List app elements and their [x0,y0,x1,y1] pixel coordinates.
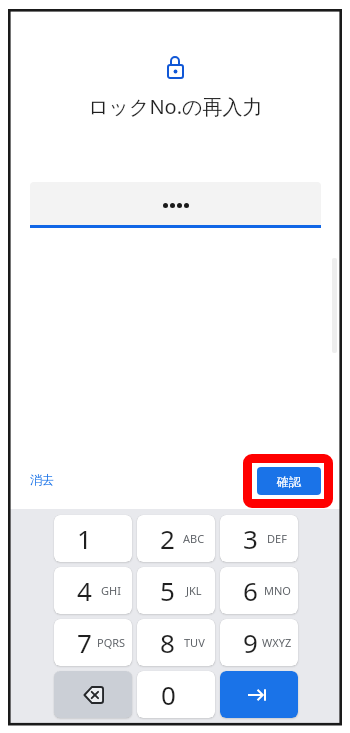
staticText: JKL [186,583,202,598]
staticText: DEF [267,531,287,546]
button[interactable]: 5 [137,567,215,614]
button[interactable]: 4 [54,567,132,614]
staticText: 5 [160,573,175,608]
staticText: MNO [264,583,291,598]
staticText: ABC [183,531,205,546]
staticText: 消去 [30,472,54,487]
staticText: 9 [243,625,258,660]
button[interactable]: Backspace [54,671,132,718]
button[interactable]: 7 [54,619,132,666]
staticText: TUV [184,635,205,650]
staticText: WXYZ [262,635,292,650]
button[interactable]: 9 [220,619,298,666]
button[interactable]: Lock number entry field [30,182,321,225]
button[interactable]: 消去 [24,466,60,493]
staticText: 0 [161,677,176,712]
staticText: ロックNo.の再入力 [88,93,263,120]
staticText: 確認 [277,474,301,489]
staticText: 8 [160,625,175,660]
button[interactable]: 1 [54,515,132,562]
staticText: GHI [101,583,121,598]
button[interactable]: Next [220,671,298,718]
button[interactable]: 2 [137,515,215,562]
staticText: 7 [77,625,92,660]
staticText: 2 [160,521,175,556]
staticText: PQRS [97,635,126,650]
button[interactable]: 0 [137,671,215,718]
staticText: 6 [243,573,258,608]
button[interactable]: 確認 [257,467,321,495]
button[interactable]: 3 [220,515,298,562]
staticText: 1 [77,521,92,556]
staticText: 4 [77,573,92,608]
button[interactable]: 6 [220,567,298,614]
button[interactable]: 8 [137,619,215,666]
staticText: 3 [243,521,258,556]
